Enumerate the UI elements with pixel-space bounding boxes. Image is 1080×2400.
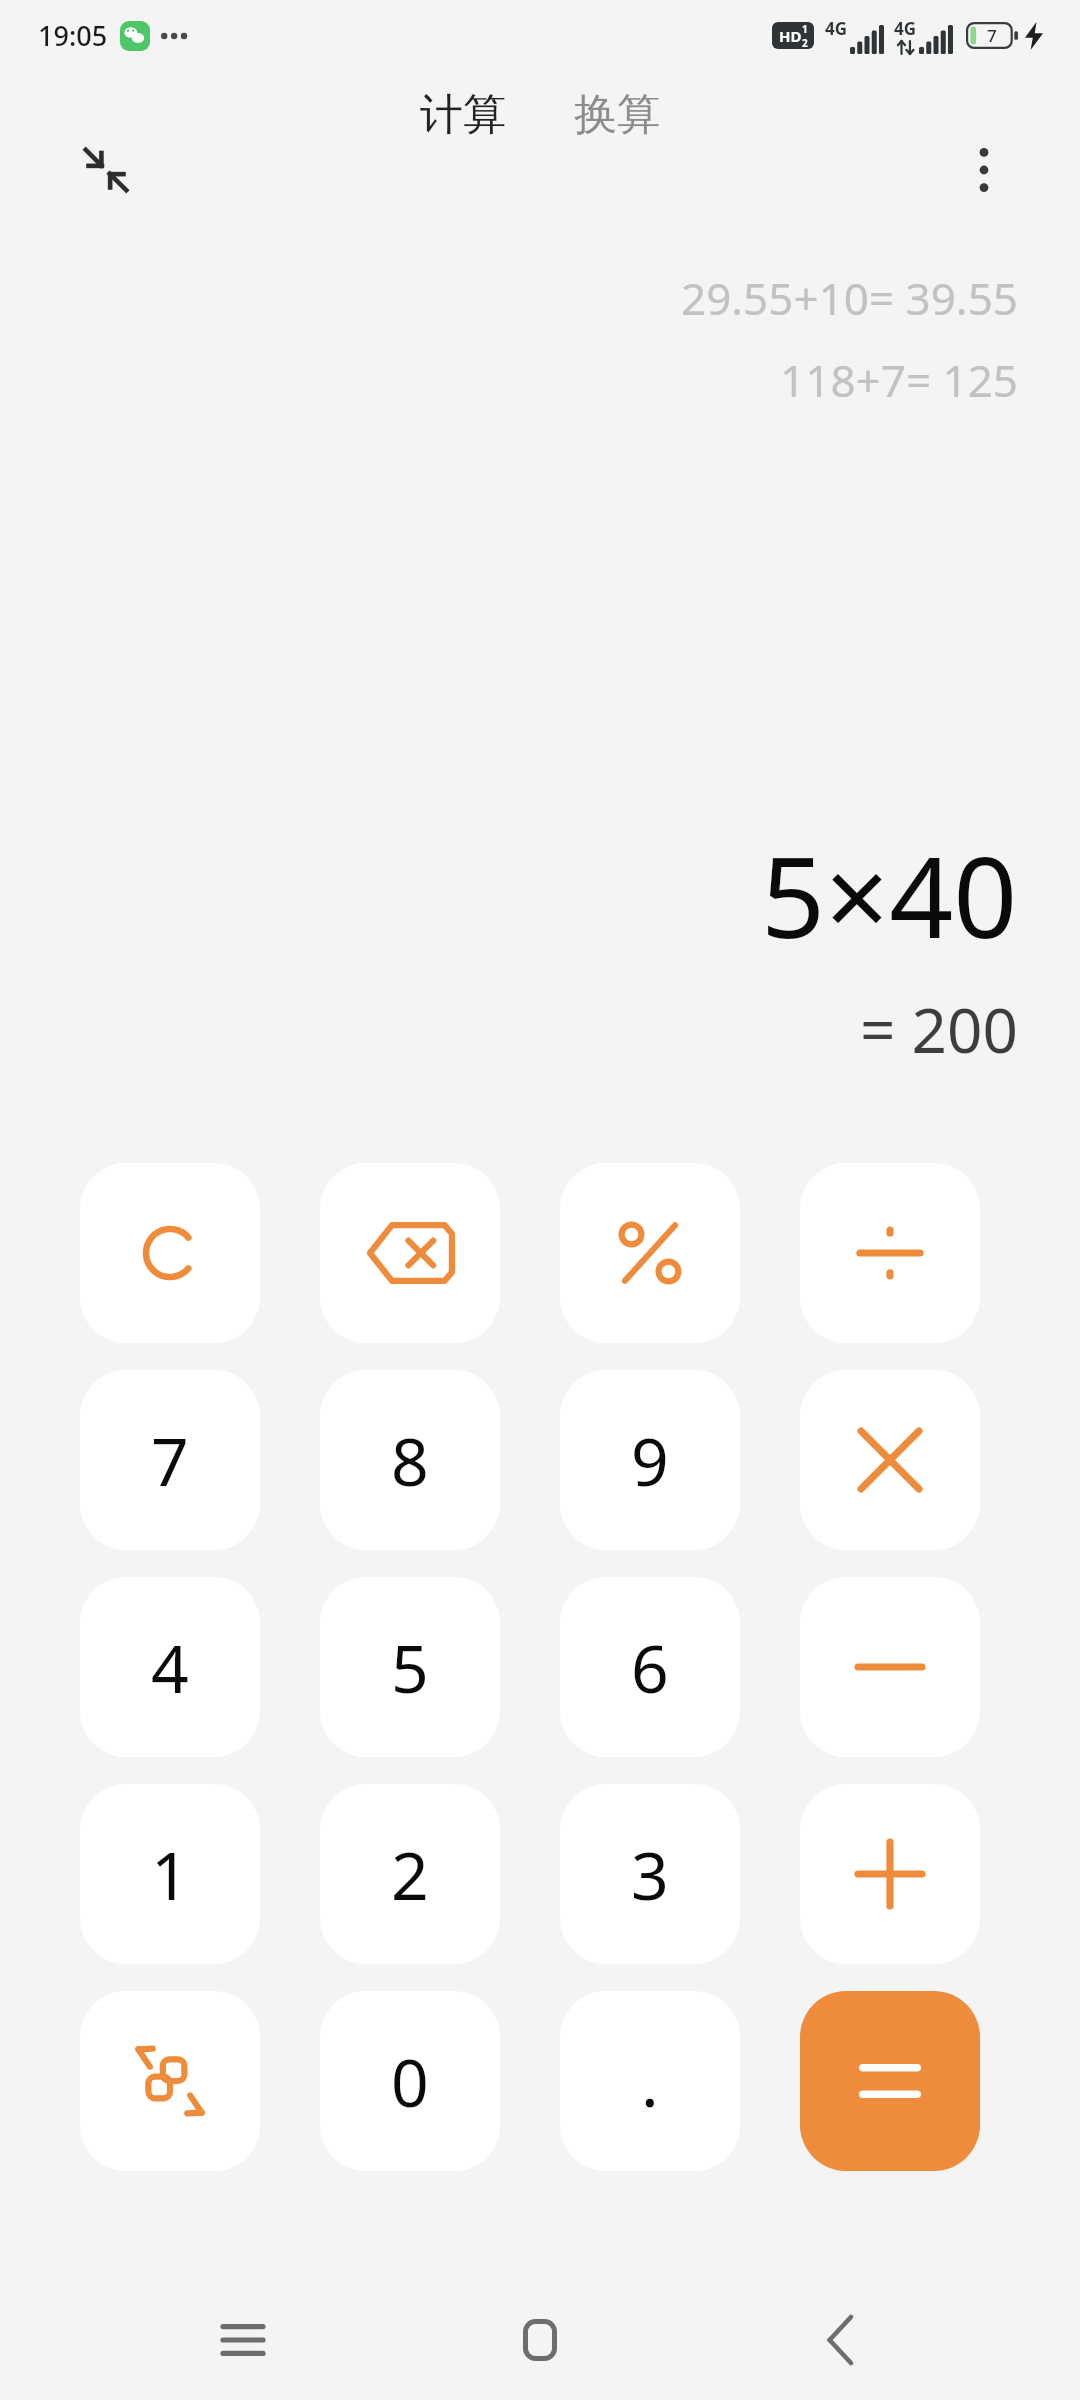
button[interactable]: Minus [800, 1577, 980, 1757]
staticText: 3 [631, 1829, 669, 1919]
button[interactable]: Clear [80, 1163, 260, 1343]
staticText: 2 [391, 1829, 429, 1919]
button[interactable]: Equals [800, 1991, 980, 2171]
button[interactable]: Home [485, 2285, 595, 2395]
button[interactable]: 0 [320, 1991, 500, 2171]
staticText: 5 [391, 1622, 429, 1712]
button[interactable]: 计算 [406, 80, 520, 150]
staticText: . [641, 2036, 659, 2126]
staticText: 29.55+10= 39.55 [680, 268, 1018, 328]
button[interactable]: Backspace [320, 1163, 500, 1343]
button[interactable]: 1 [80, 1784, 260, 1964]
staticText: 9 [631, 1415, 669, 1505]
button[interactable]: Divide [800, 1163, 980, 1343]
staticText: HD [779, 26, 802, 46]
staticText: 4 [151, 1622, 189, 1712]
staticText: 0 [391, 2036, 429, 2126]
button[interactable]: 4 [80, 1577, 260, 1757]
button[interactable]: 5 [320, 1577, 500, 1757]
button[interactable]: Percent [560, 1163, 740, 1343]
staticText: 计算 [420, 88, 506, 142]
button[interactable]: Collapse [62, 126, 150, 214]
staticText: 118+7= 125 [780, 350, 1018, 410]
staticText: 6 [631, 1622, 669, 1712]
button[interactable]: Multiply [800, 1370, 980, 1550]
button[interactable]: 2 [320, 1784, 500, 1964]
staticText: 5×40 [761, 818, 1018, 971]
button[interactable]: . [560, 1991, 740, 2171]
button[interactable]: More options [940, 126, 1028, 214]
staticText: 换算 [574, 88, 660, 142]
button[interactable]: 8 [320, 1370, 500, 1550]
button[interactable]: Plus [800, 1784, 980, 1964]
staticText: 2 [802, 36, 808, 49]
staticText: 1 [802, 22, 808, 36]
staticText: 19:05 [38, 17, 108, 54]
button[interactable]: 7 [80, 1370, 260, 1550]
button[interactable]: Back [783, 2285, 893, 2395]
staticText: 4G [825, 17, 848, 40]
staticText: 4G [894, 17, 917, 40]
button[interactable]: 6 [560, 1577, 740, 1757]
button[interactable]: 换算 [560, 80, 674, 150]
button[interactable]: Unit conversion [80, 1991, 260, 2171]
staticText: 8 [391, 1415, 429, 1505]
button[interactable]: 9 [560, 1370, 740, 1550]
button[interactable]: Recent apps [188, 2285, 298, 2395]
staticText: 7 [151, 1415, 189, 1505]
staticText: 1 [151, 1829, 189, 1919]
button[interactable]: 3 [560, 1784, 740, 1964]
staticText: 7 [987, 24, 997, 47]
staticText: = 200 [860, 987, 1018, 1071]
